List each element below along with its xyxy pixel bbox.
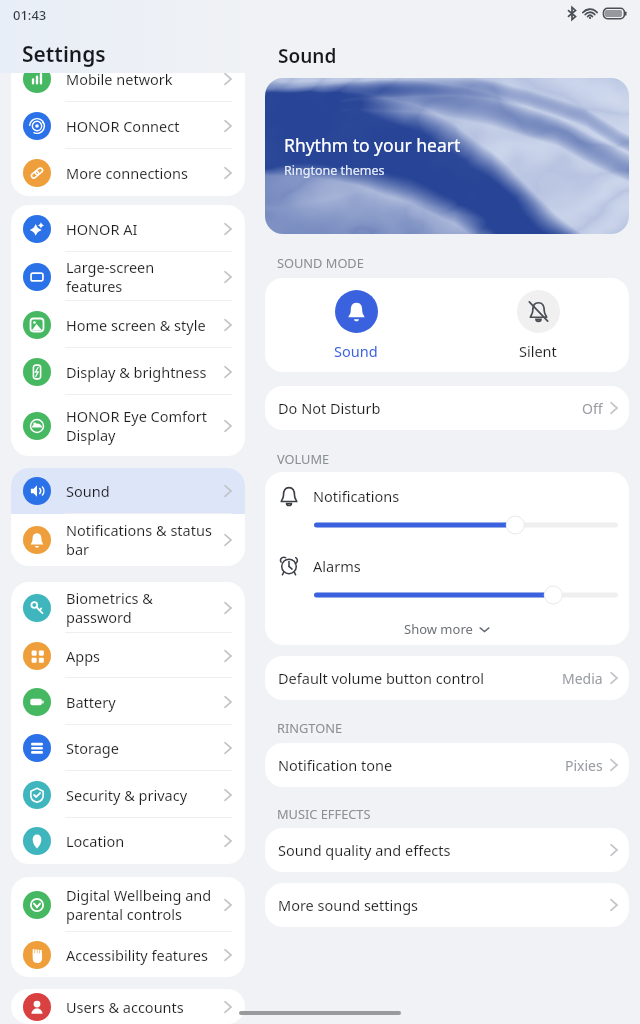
staticText: Sound <box>278 43 337 69</box>
staticText: Accessibility features <box>66 945 208 965</box>
staticText: Sound <box>66 481 110 501</box>
staticText: Sound <box>334 341 378 361</box>
button[interactable]: Battery <box>11 678 245 725</box>
staticText: Display & brightness <box>66 362 207 382</box>
staticText: Settings <box>22 40 106 69</box>
staticText: Biometrics & password <box>66 588 153 628</box>
staticText: Security & privacy <box>66 785 188 805</box>
button[interactable]: Apps <box>11 633 245 678</box>
button[interactable]: Show more <box>265 615 629 643</box>
button[interactable]: Sound quality and effects <box>265 828 629 872</box>
staticText: Do Not Disturb <box>278 398 582 418</box>
staticText: Alarms <box>313 556 361 576</box>
staticText: HONOR Eye Comfort Display <box>66 406 208 446</box>
staticText: More connections <box>66 163 189 183</box>
staticText: More sound settings <box>278 895 606 915</box>
staticText: Notifications & status bar <box>66 520 212 560</box>
staticText: Show more <box>404 620 473 638</box>
staticText: Silent <box>519 341 557 361</box>
staticText: 01:43 <box>13 6 47 24</box>
button[interactable]: Security & privacy <box>11 771 245 818</box>
staticText: Storage <box>66 738 119 758</box>
button[interactable]: HONOR Eye Comfort Display <box>11 395 245 456</box>
staticText: Location <box>66 831 125 851</box>
staticText: Notifications <box>313 486 400 506</box>
button[interactable]: Display & brightness <box>11 348 245 395</box>
staticText: Battery <box>66 692 116 712</box>
staticText: Media <box>562 669 603 688</box>
staticText: Rhythm to your heart <box>284 133 461 157</box>
button[interactable]: Storage <box>11 725 245 771</box>
staticText: Digital Wellbeing and parental controls <box>66 885 212 925</box>
button[interactable]: Location <box>11 818 245 864</box>
button[interactable]: Silent mode <box>447 278 629 372</box>
button[interactable]: Sound mode <box>265 278 447 372</box>
staticText: Notification tone <box>278 755 565 775</box>
button[interactable]: Mobile network <box>11 55 245 102</box>
staticText: MUSIC EFFECTS <box>277 805 371 822</box>
button[interactable]: Accessibility features <box>11 932 245 977</box>
button[interactable]: Users & accounts <box>11 989 245 1024</box>
staticText: VOLUME <box>277 450 330 467</box>
staticText: HONOR AI <box>66 219 138 239</box>
staticText: Pixies <box>565 756 603 775</box>
button[interactable]: Large-screen features <box>11 252 245 301</box>
button[interactable]: Notifications & status bar <box>11 514 245 566</box>
button[interactable]: Biometrics & password <box>11 582 245 633</box>
staticText: HONOR Connect <box>66 116 180 136</box>
staticText: Off <box>582 399 603 418</box>
button[interactable]: Home screen & style <box>11 301 245 348</box>
button[interactable]: Do Not Disturb <box>265 386 629 430</box>
staticText: RINGTONE <box>277 719 343 736</box>
button[interactable]: Notification tone <box>265 743 629 787</box>
staticText: SOUND MODE <box>277 254 364 271</box>
button[interactable]: More sound settings <box>265 883 629 927</box>
button[interactable]: Rhythm to your heart <box>265 78 629 234</box>
button[interactable]: HONOR AI <box>11 205 245 252</box>
button[interactable]: Digital Wellbeing and parental controls <box>11 877 245 932</box>
button[interactable]: Sound <box>11 468 245 514</box>
button[interactable]: Default volume button control <box>265 656 629 700</box>
staticText: Sound quality and effects <box>278 840 606 860</box>
staticText: Default volume button control <box>278 668 562 688</box>
button[interactable]: More connections <box>11 149 245 196</box>
staticText: Home screen & style <box>66 315 206 335</box>
button[interactable]: HONOR Connect <box>11 102 245 149</box>
staticText: Large-screen features <box>66 257 155 297</box>
staticText: Apps <box>66 646 101 666</box>
staticText: Ringtone themes <box>284 162 385 179</box>
staticText: Users & accounts <box>66 997 184 1017</box>
staticText: Mobile network <box>66 69 173 89</box>
